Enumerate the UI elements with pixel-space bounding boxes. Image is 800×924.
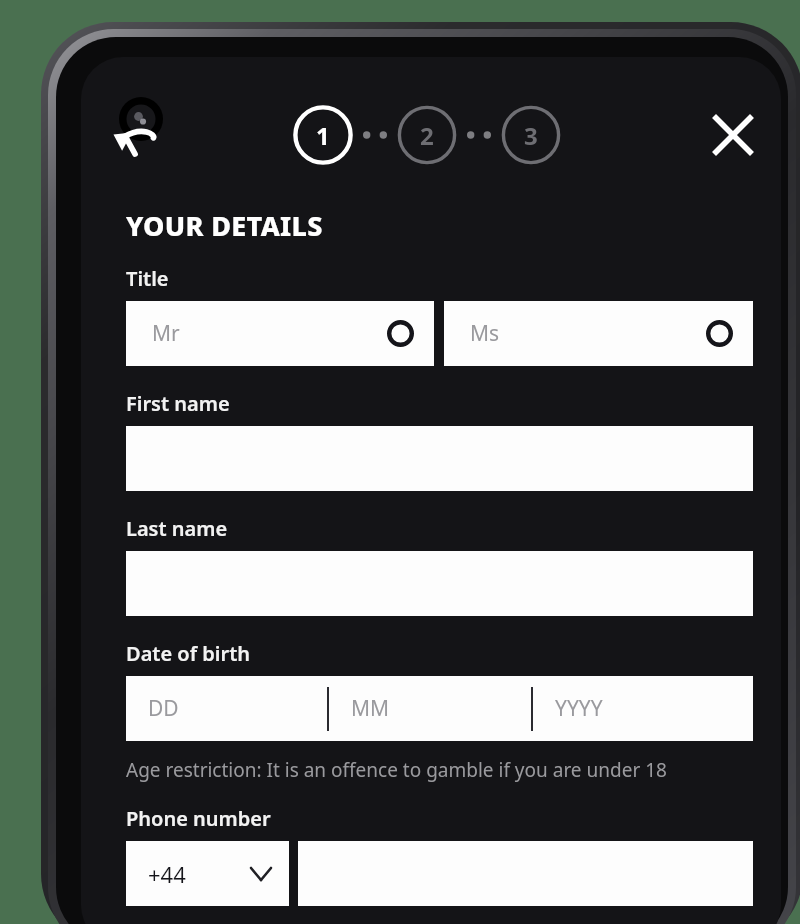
staticText: First name [126, 390, 230, 417]
staticText: +44 [148, 859, 186, 889]
staticText: YYYY [555, 694, 603, 723]
staticText: Last name [126, 515, 228, 542]
button[interactable]: Close [705, 107, 761, 163]
button[interactable]: Ms [444, 301, 753, 366]
button[interactable]: 1 [292, 105, 354, 165]
staticText: Title [126, 265, 169, 292]
button[interactable]: 3 [500, 105, 562, 165]
staticText: Date of birth [126, 640, 251, 667]
staticText: Age restriction: It is an offence to gam… [126, 757, 667, 783]
button[interactable]: Mr [126, 301, 434, 366]
staticText: 3 [524, 119, 538, 152]
button[interactable]: +44 [126, 841, 289, 906]
staticText: Phone number [126, 805, 271, 832]
staticText: YOUR DETAILS [126, 207, 323, 244]
button[interactable]: 2 [396, 105, 458, 165]
staticText: Ms [470, 319, 500, 348]
staticText: 2 [420, 119, 434, 152]
button[interactable]: Back [107, 113, 161, 167]
button[interactable]: DD [126, 676, 753, 741]
staticText: MM [351, 694, 390, 723]
staticText: 1 [316, 119, 330, 152]
staticText: DD [148, 694, 179, 723]
staticText: Mr [152, 319, 180, 348]
